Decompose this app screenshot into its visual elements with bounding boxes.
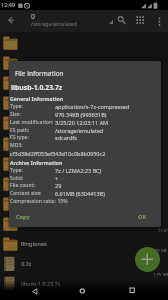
staticText: 1.75 MB [153,271,168,277]
staticText: Copy [16,213,30,221]
staticText: Content size: [10,190,42,197]
staticText: FS type: [10,134,29,141]
staticText: 29 [55,182,62,189]
button[interactable] [0,35,168,55]
staticText: sdcardfs [55,134,77,141]
button[interactable] [0,216,168,236]
staticText: 7z / LZMA2:23 BCJ [55,167,102,174]
button[interactable]: 0.7z [0,256,168,276]
staticText: FS path: [10,127,30,134]
button[interactable] [0,136,168,156]
staticText: 6.01MB (6304413B) [55,190,105,197]
staticText: 11/4/20 [158,228,168,233]
staticText: application/x-7z-compressed [55,103,130,110]
staticText: Type: [10,103,23,110]
button[interactable] [27,285,41,298]
button[interactable]: libusb-1.0.23.7z [0,276,168,296]
button[interactable] [154,13,166,28]
staticText: + [55,175,59,182]
button[interactable] [0,55,168,75]
staticText: /storage/emulated [55,127,104,134]
staticText: cf3d38d2ff053ef343d10c0b8b0950c2 [10,150,106,157]
button[interactable] [0,196,168,216]
staticText: OK [138,213,147,221]
staticText: Size: [10,111,21,118]
staticText: MD5: [10,142,23,149]
staticText: Archive Information [10,159,63,166]
button[interactable] [0,176,168,196]
staticText: Type: [10,167,23,174]
staticText: 970.34KB (993631B) [55,111,107,118]
staticText: 3/25/20 12:03:11 AM [55,119,109,126]
staticText: File information [15,69,64,78]
button[interactable]: Ringtones [0,236,168,256]
button[interactable]: Copy [10,208,42,226]
staticText: Last modification: [10,119,54,126]
button[interactable] [0,115,168,135]
staticText: Solid: [10,175,24,182]
button[interactable] [0,156,168,176]
staticText: 1.09 GB [151,247,167,253]
button[interactable] [0,95,168,115]
staticText: 12:49 [1,1,16,8]
button[interactable] [135,247,160,272]
button[interactable] [0,75,168,95]
button[interactable] [114,13,129,28]
staticText: libusb-1.0.23.7z [11,83,63,92]
button[interactable]: OK [130,208,158,226]
staticText: libusb-1.0.23.7z [21,280,61,287]
staticText: Compression ratio: 15% [10,198,68,205]
button[interactable] [6,14,20,28]
button[interactable] [75,285,89,298]
staticText: 0.7z [21,260,32,267]
staticText: General Information [10,95,64,102]
staticText: Ringtones [21,240,47,247]
button[interactable] [133,13,148,28]
staticText: /storage/emulated [31,20,77,27]
staticText: 0 [31,12,35,21]
staticText: File count: [10,182,36,189]
button[interactable] [126,285,140,298]
